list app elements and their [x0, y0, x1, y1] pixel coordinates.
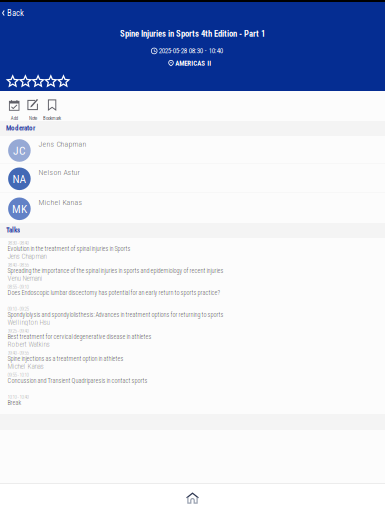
staticText: Break	[8, 399, 22, 406]
button[interactable]: Home	[0, 484, 385, 512]
button[interactable]: 09:40 - 09:55	[0, 348, 385, 370]
staticText: Does Endoscopic lumbar discectomy has po…	[8, 289, 221, 296]
staticText: Talks	[6, 226, 20, 234]
staticText: Moderator	[6, 124, 35, 132]
button[interactable]: MK	[0, 193, 385, 223]
staticText: Spine Injuries in Sports 4th Edition - P…	[120, 29, 265, 39]
staticText: Back	[7, 8, 24, 18]
staticText: 09:40 - 09:55	[8, 350, 29, 356]
staticText: 09:10 - 09:25	[8, 306, 29, 312]
staticText: 08:30 - 08:40	[8, 240, 29, 246]
button[interactable]: 10:10 - 10:40	[0, 392, 385, 414]
button[interactable]: Back	[0, 6, 28, 19]
staticText: 2025-05-28 08:30 - 10:40	[159, 47, 223, 55]
button[interactable]: Bookmark	[40, 99, 64, 121]
staticText: Note	[29, 116, 37, 121]
staticText: Bookmark	[43, 116, 61, 121]
staticText: Nelson Astur	[39, 168, 80, 177]
button[interactable]: NA	[0, 164, 385, 192]
staticText: Add	[11, 116, 18, 121]
staticText: Jens Chapman	[8, 252, 47, 261]
staticText: Michel Kanas	[39, 198, 83, 207]
staticText: Jens Chapman	[39, 139, 87, 149]
staticText: Michel Kanas	[8, 362, 44, 371]
staticText: Wellington Hsu	[8, 318, 50, 327]
staticText: MK	[12, 202, 27, 216]
staticText: Evolution in the treatment of spinal inj…	[8, 245, 131, 252]
staticText: 10:10 - 10:40	[8, 394, 29, 400]
button[interactable]: 09:10 - 09:25	[0, 304, 385, 326]
button[interactable]: JC	[0, 136, 385, 163]
staticText: Robert Watkins	[8, 340, 50, 349]
button[interactable]: 09:55 - 10:10	[0, 370, 385, 392]
staticText: 09:55 - 10:10	[8, 372, 29, 378]
staticText: Concussion and Transient Quadriparesis i…	[8, 377, 148, 384]
button[interactable]: 09:25 - 09:40	[0, 326, 385, 348]
staticText: 09:25 - 09:40	[8, 328, 29, 334]
staticText: Spreading the importance of the spinal i…	[8, 267, 224, 274]
staticText: Spondylolysis and spondylolisthesis: Adv…	[8, 311, 224, 318]
button[interactable]: 08:30 - 08:40	[0, 238, 385, 260]
button[interactable]: Note	[21, 99, 45, 121]
button[interactable]: Add	[2, 99, 26, 121]
button[interactable]: 08:40 - 08:55	[0, 260, 385, 282]
staticText: AMERICAS II	[175, 59, 211, 67]
staticText: Venu Nemani	[8, 274, 43, 283]
staticText: Best treatment for cervical degenerative…	[8, 333, 152, 340]
staticText: NA	[12, 172, 26, 186]
button[interactable]: 08:55 - 09:10	[0, 282, 385, 304]
staticText: Spine injections as a treatment option i…	[8, 355, 124, 362]
staticText: 08:40 - 08:55	[8, 262, 29, 268]
staticText: JC	[13, 144, 26, 157]
staticText: 08:55 - 09:10	[8, 284, 29, 290]
